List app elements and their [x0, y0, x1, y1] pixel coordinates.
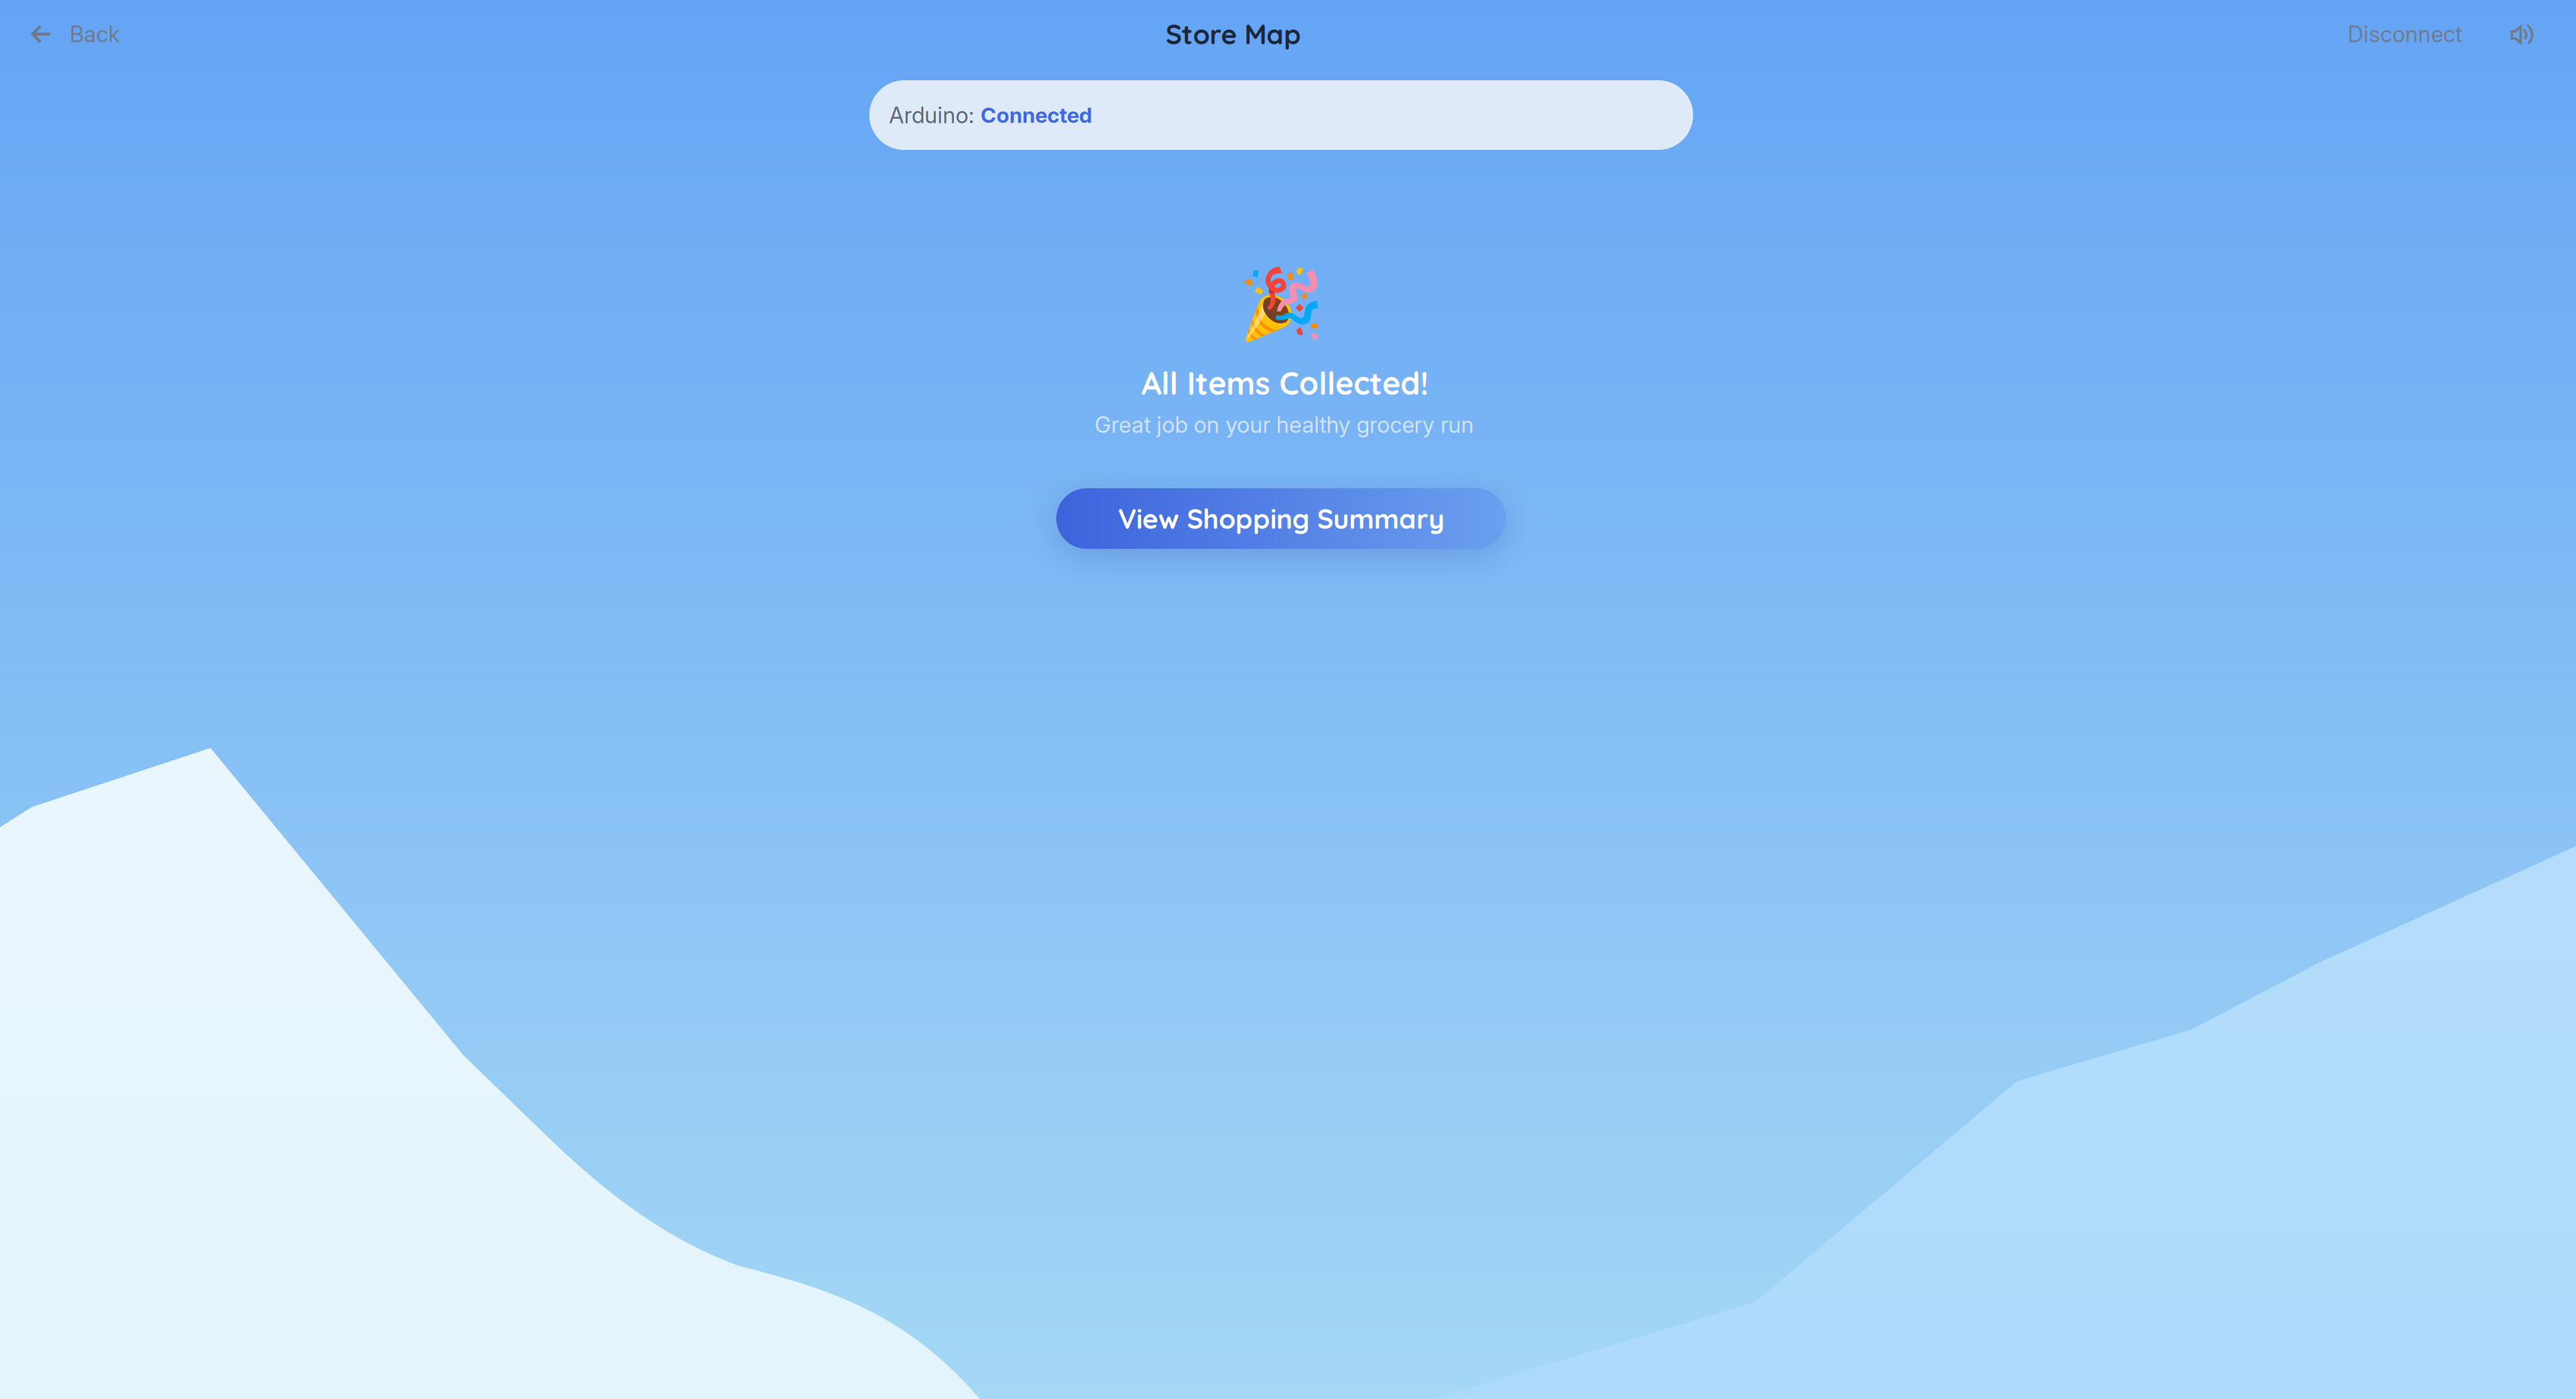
- button[interactable]: Back: [22, 9, 131, 60]
- staticText: Back: [70, 21, 120, 48]
- staticText: Arduino:: [889, 102, 981, 129]
- staticText: All Items Collected!: [1141, 364, 1428, 403]
- button[interactable]: Disconnect: [2337, 9, 2473, 60]
- staticText: Store Map: [1166, 17, 1301, 51]
- staticText: Connected: [981, 102, 1092, 128]
- staticText: 🎉: [1238, 265, 1324, 344]
- staticText: Disconnect: [2348, 21, 2462, 48]
- button[interactable]: View Shopping Summary: [1056, 488, 1506, 549]
- staticText: Great job on your healthy grocery run: [1095, 411, 1474, 438]
- staticText: View Shopping Summary: [1118, 502, 1444, 536]
- button[interactable]: Mute: [2499, 14, 2547, 55]
